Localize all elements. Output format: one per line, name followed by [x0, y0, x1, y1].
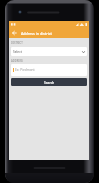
staticText: Ex: Piedmont	[15, 68, 35, 72]
staticText: Address in district	[21, 31, 52, 36]
button[interactable]: Select	[11, 47, 87, 56]
button[interactable]: Search	[11, 78, 87, 86]
staticText: Select	[13, 50, 22, 54]
button[interactable]: Ex: Piedmont	[11, 64, 87, 76]
staticText: DISTRICT	[11, 41, 23, 45]
staticText: Search	[44, 81, 55, 85]
button[interactable]: Back	[10, 30, 18, 36]
staticText: ADDRESS	[11, 59, 23, 63]
